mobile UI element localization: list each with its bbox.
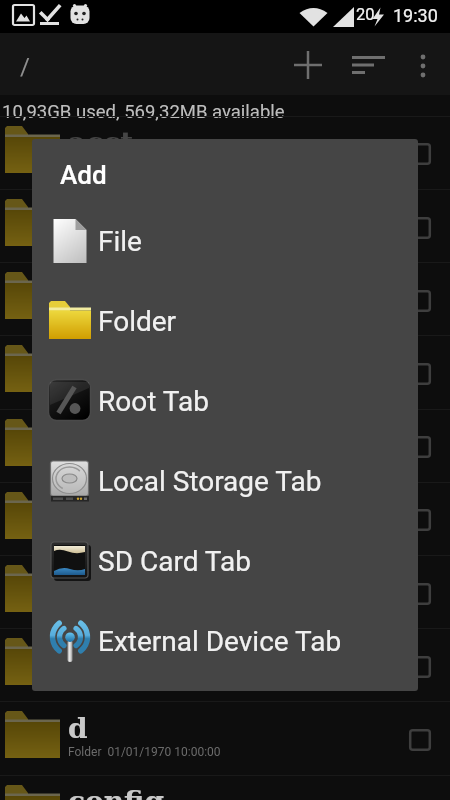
staticText: config: [68, 785, 165, 800]
button[interactable]: [0, 628, 450, 701]
button[interactable]: [0, 189, 450, 262]
staticText: External Device Tab: [98, 625, 342, 658]
staticText: etc: [68, 492, 116, 525]
button[interactable]: File: [32, 201, 418, 281]
staticText: 10,93GB used, 569,32MB available: [2, 101, 285, 123]
staticText: 19:30: [393, 5, 438, 26]
staticText: d: [68, 712, 88, 745]
staticText: acct: [68, 126, 134, 159]
staticText: SD Card Tab: [98, 545, 251, 578]
button[interactable]: [399, 41, 447, 89]
staticText: Local Storage Tab: [98, 465, 322, 498]
staticText: dev: [68, 419, 122, 452]
button[interactable]: [0, 555, 450, 628]
button[interactable]: [0, 701, 450, 774]
button[interactable]: Root Tab: [32, 361, 418, 441]
button[interactable]: [0, 775, 450, 800]
button[interactable]: [0, 262, 450, 335]
button[interactable]: [0, 116, 450, 189]
button[interactable]: [0, 409, 450, 482]
staticText: Folder 01/01/1970 10:00:00: [68, 233, 221, 247]
staticText: Folder 01/01/1970 10:00:00: [68, 380, 221, 394]
staticText: Folder 01/01/1970 10:00:00: [68, 160, 221, 174]
staticText: Folder 01/01/1970 10:00:00: [68, 745, 221, 759]
staticText: mnt: [68, 566, 131, 599]
button[interactable]: [284, 41, 332, 89]
button[interactable]: [0, 335, 450, 408]
button[interactable]: SD Card Tab: [32, 521, 418, 601]
button[interactable]: [342, 41, 390, 89]
button[interactable]: External Device Tab: [32, 601, 418, 681]
button[interactable]: Local Storage Tab: [32, 441, 418, 521]
button[interactable]: Folder: [32, 281, 418, 361]
staticText: sys: [68, 639, 116, 672]
staticText: cache: [68, 200, 159, 233]
button[interactable]: [0, 482, 450, 555]
staticText: Root Tab: [98, 385, 209, 418]
staticText: File: [98, 225, 142, 258]
staticText: 20: [356, 5, 375, 24]
staticText: Folder: [98, 305, 177, 338]
staticText: Add: [60, 160, 107, 190]
staticText: Folder 01/01/1970 10:00:00: [68, 453, 221, 467]
staticText: /: [20, 53, 30, 81]
staticText: Folder 01/01/1970 10:00:00: [68, 306, 221, 320]
